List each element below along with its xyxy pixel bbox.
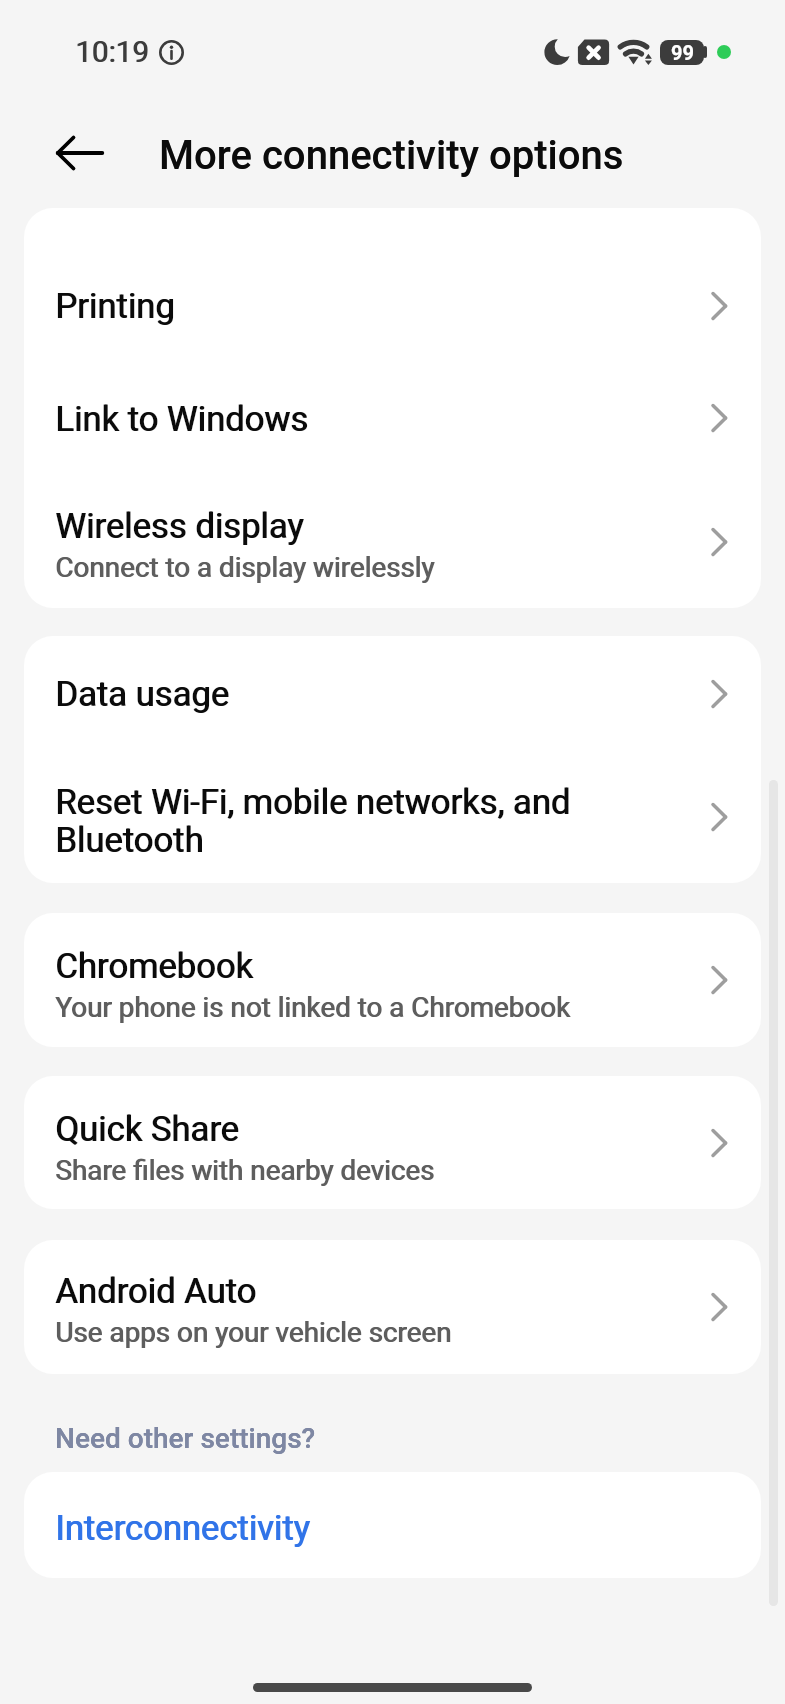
staticText: Reset Wi-Fi, mobile networks, and Blueto…: [56, 782, 684, 861]
staticText: Connect to a display wirelessly: [55, 551, 435, 584]
staticText: Chromebook: [56, 946, 254, 987]
button[interactable]: Interconnectivity: [24, 1472, 761, 1578]
staticText: Need other settings?: [55, 1422, 316, 1455]
button[interactable]: Android Auto: [24, 1240, 761, 1374]
staticText: Interconnectivity: [56, 1508, 311, 1549]
button[interactable]: Data usage: [24, 636, 761, 751]
staticText: Data usage: [55, 674, 229, 715]
staticText: Share files with nearby devices: [55, 1154, 435, 1187]
staticText: Link to Windows: [55, 399, 308, 440]
staticText: Chromebook: [55, 946, 253, 987]
staticText: Connect to a display wirelessly: [56, 551, 436, 584]
staticText: Printing: [55, 286, 175, 327]
staticText: More connectivity options: [159, 132, 624, 179]
button[interactable]: Link to Windows: [24, 362, 761, 474]
staticText: 99: [671, 41, 694, 64]
button[interactable]: Back: [36, 109, 124, 197]
button[interactable]: Printing: [24, 208, 761, 362]
staticText: Need other settings?: [55, 1422, 316, 1455]
staticText: Wireless display: [55, 506, 304, 547]
staticText: Data usage: [56, 674, 230, 715]
staticText: 10:19: [76, 35, 150, 70]
button[interactable]: Reset Wi-Fi, mobile networks, and Blueto…: [24, 751, 761, 883]
staticText: Printing: [56, 286, 176, 327]
staticText: Android Auto: [56, 1271, 257, 1312]
staticText: 10:19: [75, 35, 149, 70]
staticText: Your phone is not linked to a Chromebook: [55, 991, 570, 1024]
staticText: Your phone is not linked to a Chromebook: [56, 991, 571, 1024]
button[interactable]: Chromebook: [24, 913, 761, 1047]
staticText: Quick Share: [55, 1109, 239, 1150]
staticText: Quick Share: [56, 1109, 240, 1150]
staticText: Android Auto: [55, 1271, 256, 1312]
button[interactable]: Wireless display: [24, 474, 761, 608]
staticText: Reset Wi-Fi, mobile networks, and Blueto…: [55, 782, 683, 861]
staticText: Share files with nearby devices: [56, 1154, 436, 1187]
button[interactable]: Quick Share: [24, 1076, 761, 1209]
staticText: More connectivity options: [159, 132, 624, 179]
staticText: Use apps on your vehicle screen: [55, 1316, 452, 1349]
staticText: Wireless display: [56, 506, 305, 547]
staticText: Use apps on your vehicle screen: [56, 1316, 453, 1349]
staticText: Link to Windows: [56, 399, 309, 440]
staticText: Interconnectivity: [55, 1508, 310, 1549]
